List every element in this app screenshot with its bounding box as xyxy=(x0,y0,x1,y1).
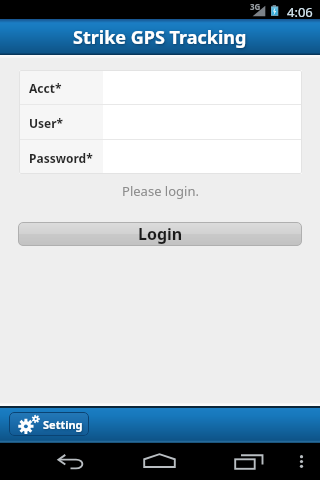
staticText: Acct* xyxy=(29,80,62,96)
staticText: Please login. xyxy=(122,182,199,200)
staticText: Setting xyxy=(43,417,83,432)
button[interactable] xyxy=(103,140,302,174)
button[interactable]: Login xyxy=(18,222,302,246)
button[interactable]: Back xyxy=(42,443,102,480)
button[interactable] xyxy=(103,70,302,104)
button[interactable]: Recent apps xyxy=(219,443,279,480)
staticText: Strike GPS Tracking xyxy=(73,25,247,50)
staticText: Password* xyxy=(29,150,93,166)
staticText: User* xyxy=(29,115,64,131)
button[interactable]: Home xyxy=(130,443,190,480)
staticText: 3G xyxy=(250,1,261,12)
staticText: Login xyxy=(138,223,183,245)
staticText: 4:06 xyxy=(287,3,313,21)
button[interactable]: More options xyxy=(286,443,316,480)
button[interactable]: Setting xyxy=(9,412,89,436)
